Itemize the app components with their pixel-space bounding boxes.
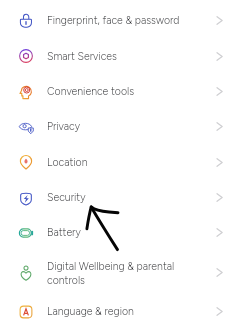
staticText: Location — [47, 156, 180, 169]
button[interactable]: Privacy — [0, 109, 235, 144]
staticText: Language & region — [47, 305, 180, 318]
button[interactable]: Language & region — [0, 300, 235, 320]
button[interactable]: Fingerprint, face & password — [0, 3, 235, 38]
staticText: Battery — [47, 226, 180, 239]
button[interactable]: Location — [0, 144, 235, 180]
button[interactable]: Smart Services — [0, 38, 235, 74]
button[interactable]: Security — [0, 180, 235, 215]
staticText: Digital Wellbeing & parental controls — [47, 260, 180, 286]
staticText: Fingerprint, face & password — [47, 14, 180, 27]
staticText: Smart Services — [47, 50, 180, 63]
button[interactable]: Digital Wellbeing & parental controls — [0, 250, 235, 300]
button[interactable]: Battery — [0, 215, 235, 250]
staticText: Privacy — [47, 120, 180, 133]
staticText: Security — [47, 191, 180, 204]
button[interactable]: Convenience tools — [0, 74, 235, 109]
staticText: Convenience tools — [47, 85, 180, 98]
